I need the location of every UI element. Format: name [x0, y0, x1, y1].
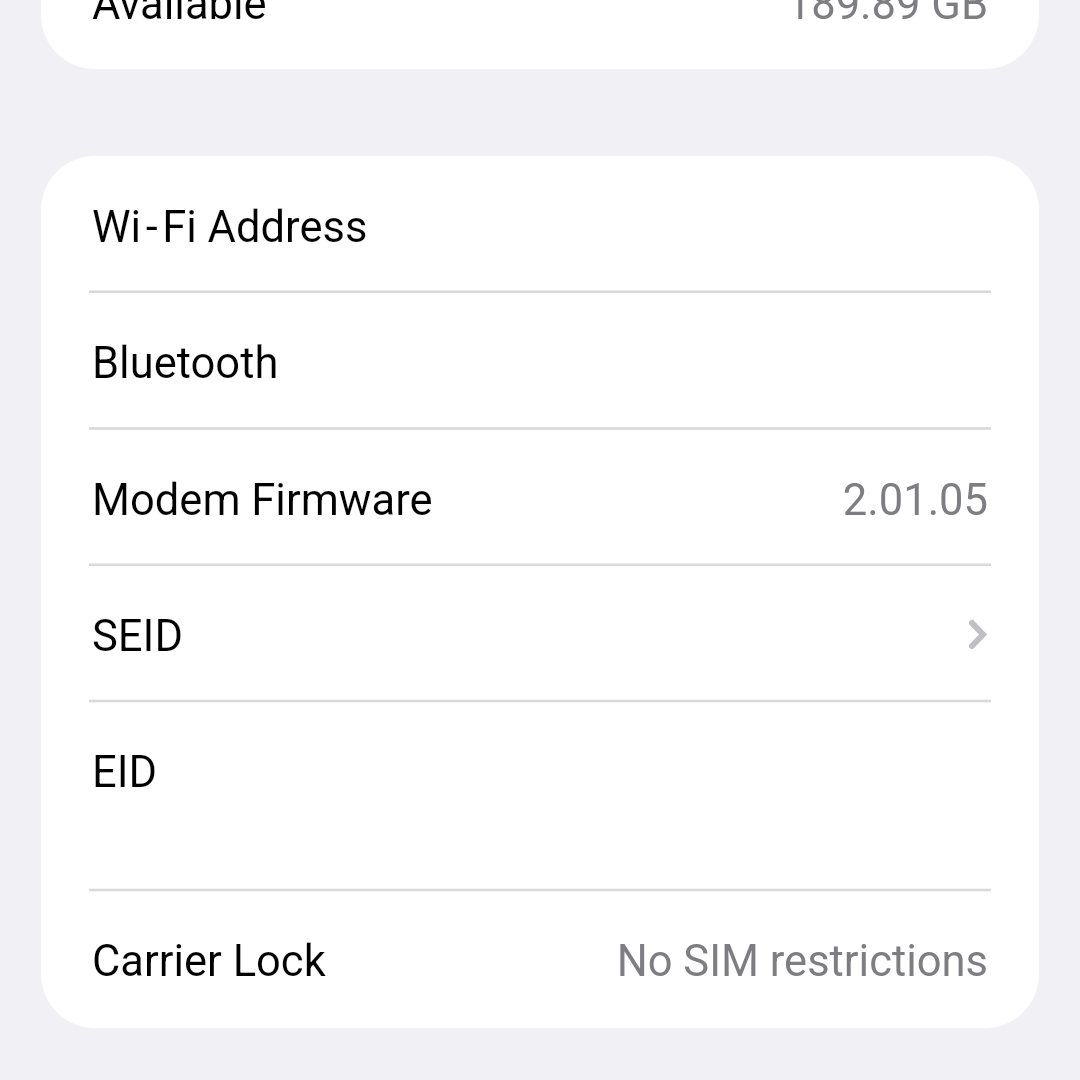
button[interactable]: Available	[41, 0, 1039, 69]
staticText: 2.01.05	[842, 475, 988, 526]
button[interactable]: Bluetooth	[41, 292, 1039, 429]
staticText: No SIM restrictions	[616, 936, 988, 987]
staticText: Available	[92, 0, 267, 30]
button[interactable]: SEID	[41, 565, 1039, 701]
staticText: 189.89 GB	[786, 0, 988, 30]
staticText: Carrier Lock	[92, 936, 326, 987]
staticText: Wi-Fi Address	[92, 202, 368, 253]
button[interactable]: Modem Firmware	[41, 429, 1039, 565]
button[interactable]: EID	[41, 701, 1039, 890]
staticText: SEID	[92, 611, 183, 662]
staticText: Modem Firmware	[92, 475, 433, 526]
button[interactable]: Wi-Fi Address	[41, 156, 1039, 292]
staticText: EID	[92, 747, 158, 798]
other: Open SEID details	[969, 620, 986, 649]
staticText: Bluetooth	[92, 338, 279, 389]
button[interactable]: Carrier Lock	[41, 890, 1039, 1028]
